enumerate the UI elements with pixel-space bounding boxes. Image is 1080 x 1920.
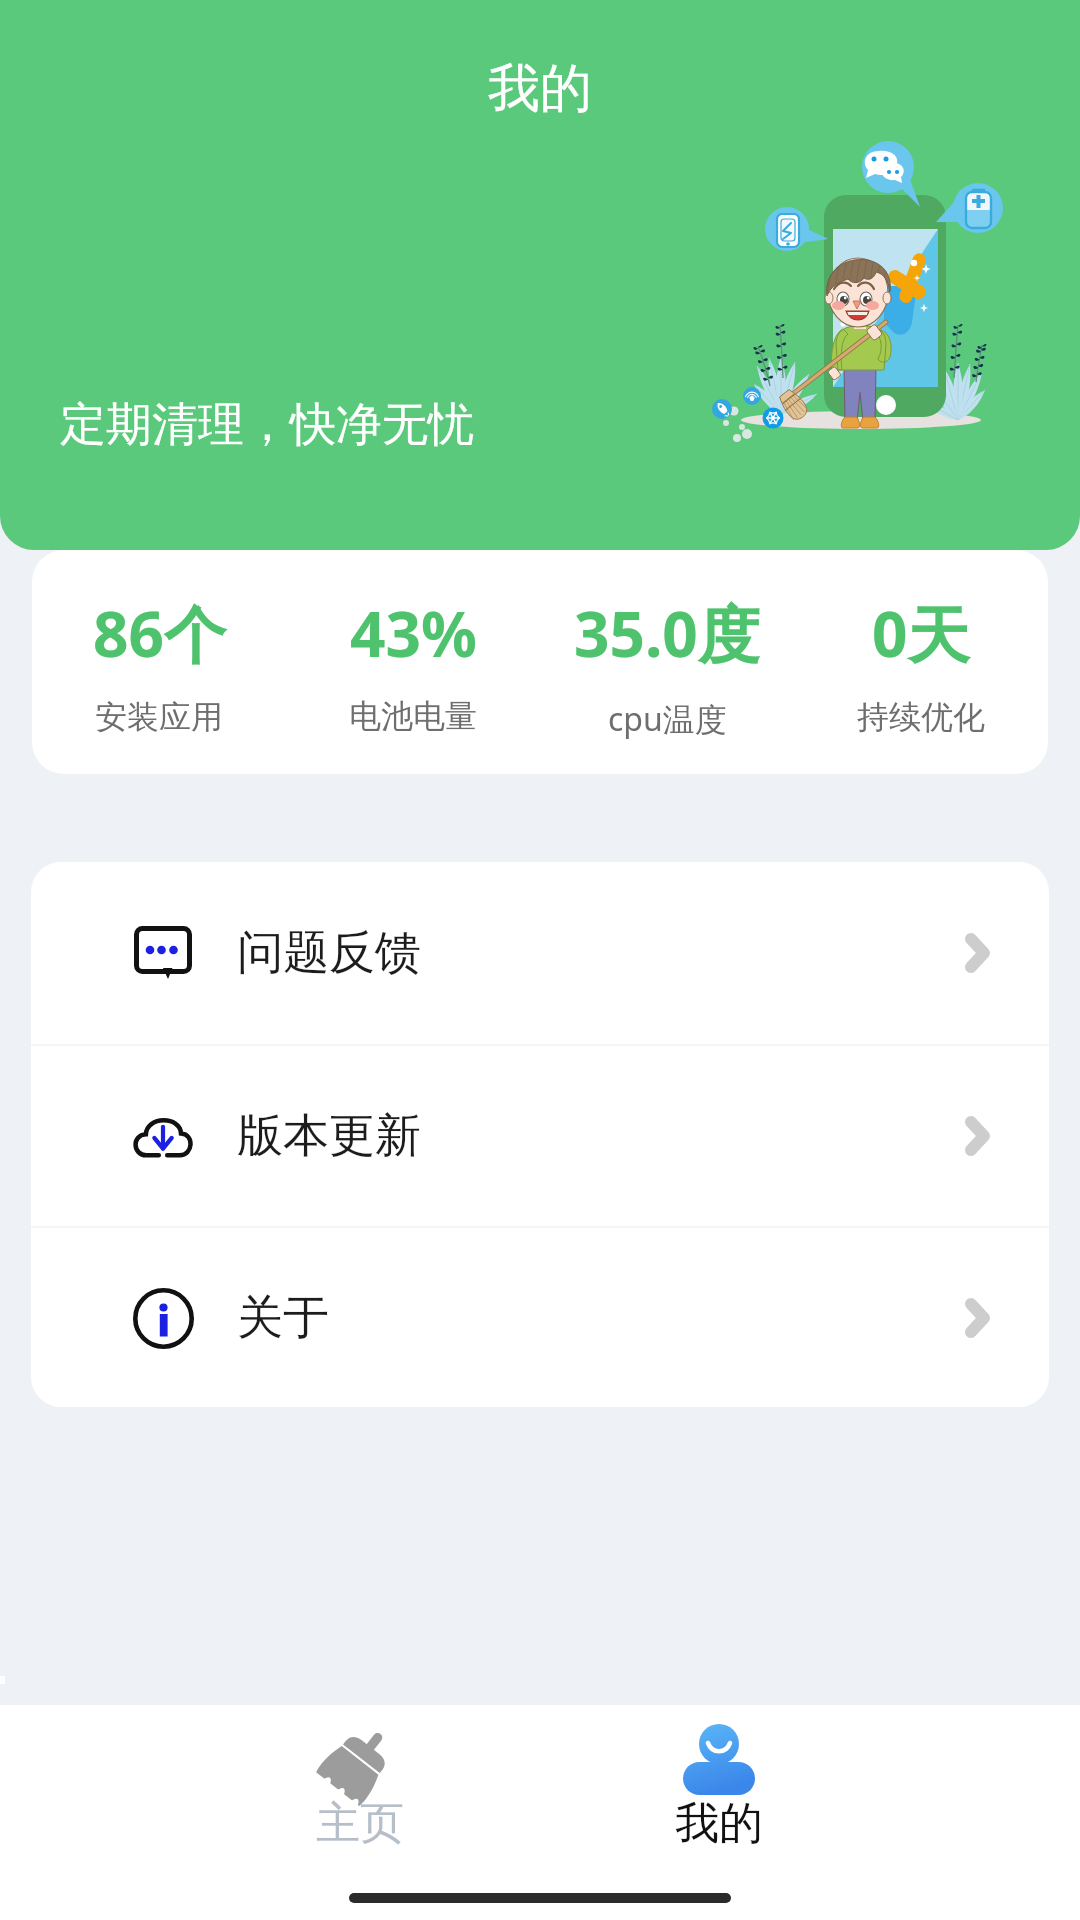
button[interactable]: 关于	[31, 1228, 1049, 1407]
staticText: cpu温度	[608, 697, 727, 741]
other: Home	[316, 1724, 404, 1796]
staticText: 电池电量	[349, 696, 477, 736]
button[interactable]: 版本更新	[31, 1046, 1049, 1226]
staticText: 问题反馈	[237, 924, 421, 982]
button[interactable]: Home	[180, 1705, 539, 1920]
staticText: 35.0度	[574, 591, 760, 676]
staticText: 安装应用	[95, 697, 223, 737]
staticText: 0天	[872, 591, 970, 676]
staticText: 86个	[93, 591, 226, 676]
staticText: 我的	[675, 1796, 763, 1851]
staticText: 持续优化	[857, 697, 985, 737]
other: Profile	[683, 1724, 755, 1796]
staticText: 定期清理，快净无忧	[60, 396, 474, 454]
button[interactable]: Profile	[539, 1705, 898, 1920]
staticText: 版本更新	[237, 1107, 421, 1165]
staticText: 43%	[350, 591, 477, 675]
staticText: 关于	[237, 1289, 329, 1347]
button[interactable]: 问题反馈	[31, 862, 1049, 1044]
staticText: 我的	[488, 56, 592, 122]
staticText: 主页	[316, 1796, 404, 1851]
